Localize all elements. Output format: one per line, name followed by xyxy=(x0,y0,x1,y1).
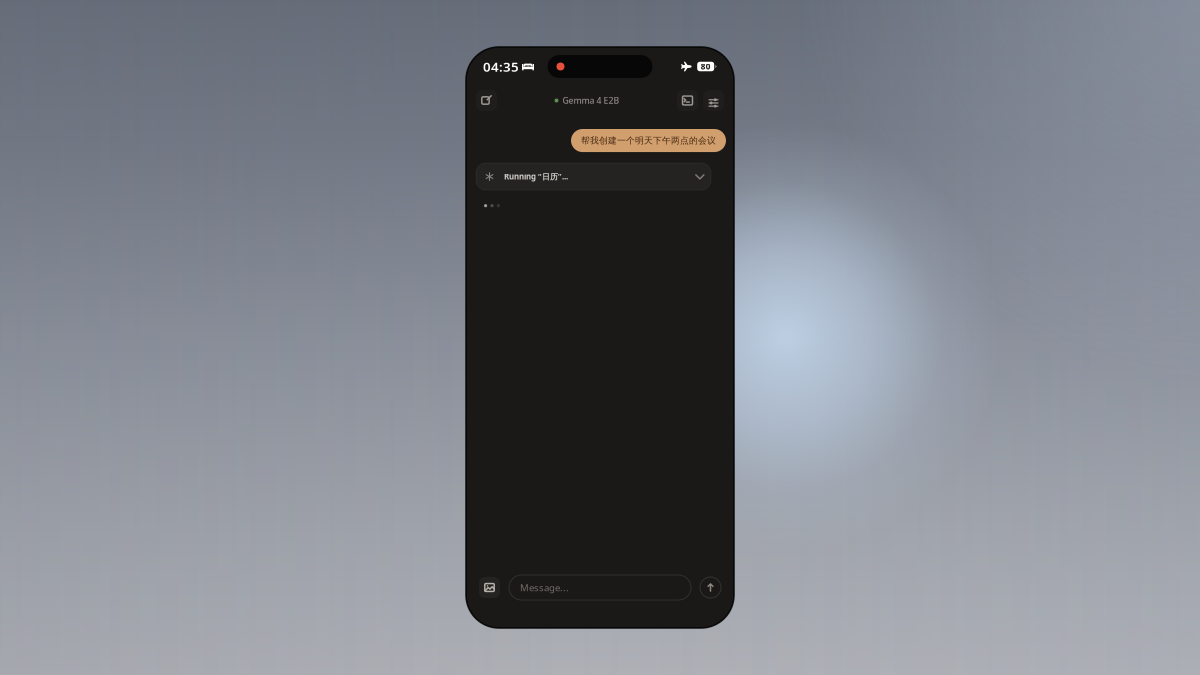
button[interactable]: Attach photo xyxy=(479,577,500,598)
staticText: Gemma 4 E2B xyxy=(562,95,619,106)
staticText: 帮我创建一个明天下午两点的会议 xyxy=(581,135,716,146)
button[interactable]: Settings xyxy=(703,90,724,111)
staticText: 80 xyxy=(701,61,711,72)
button[interactable]: Message... xyxy=(509,575,691,600)
button[interactable]: Running “日历”... xyxy=(476,163,711,190)
button[interactable]: New chat xyxy=(476,90,497,111)
staticText: Message... xyxy=(520,581,569,594)
staticText: 04:35 xyxy=(483,57,519,76)
staticText: Running “日历”... xyxy=(504,171,568,182)
button[interactable]: Send xyxy=(700,577,721,598)
button[interactable]: Console xyxy=(677,90,698,111)
